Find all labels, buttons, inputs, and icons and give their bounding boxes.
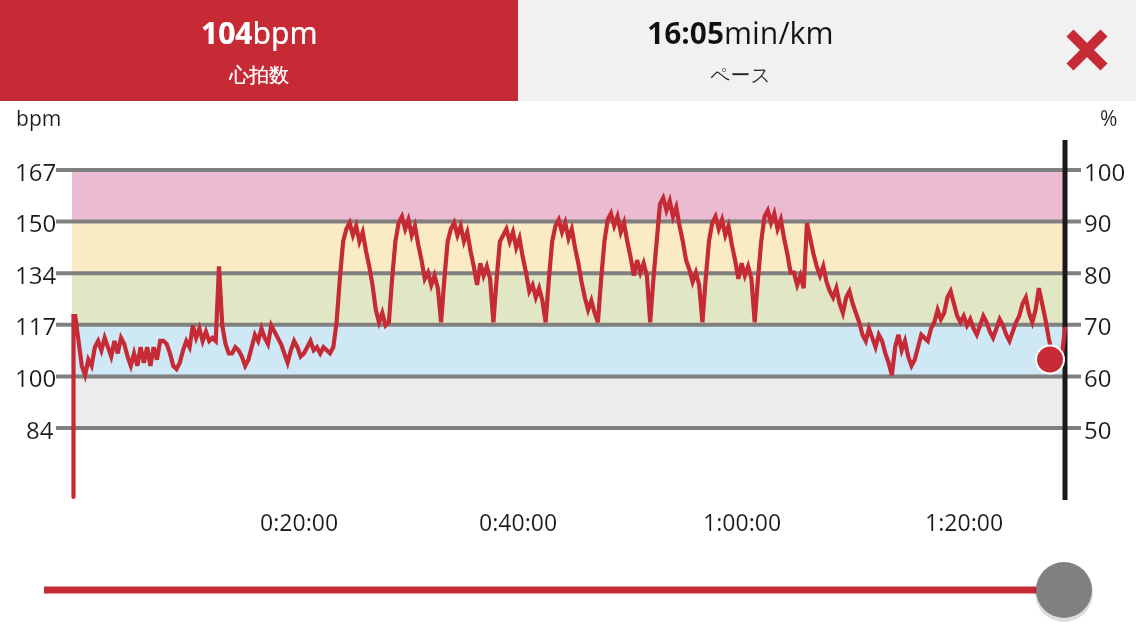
staticText: 0:20:00 xyxy=(260,506,339,537)
staticText: 90 xyxy=(1084,206,1112,239)
staticText: 104bpm xyxy=(201,12,318,53)
staticText: 0:40:00 xyxy=(479,506,558,537)
staticText: ペース xyxy=(710,63,771,88)
staticText: 84 xyxy=(26,413,54,446)
staticText: 1:00:00 xyxy=(703,506,782,537)
button[interactable]: Close xyxy=(1053,16,1121,84)
button[interactable]: 16:05min/km xyxy=(518,0,1136,101)
staticText: 16:05min/km xyxy=(647,12,834,53)
staticText: bpm xyxy=(16,104,62,133)
staticText: 心拍数 xyxy=(229,63,289,88)
staticText: 70 xyxy=(1084,309,1112,342)
staticText: 134 xyxy=(15,258,57,291)
staticText: % xyxy=(1100,104,1118,133)
button[interactable]: Timeline scrubber xyxy=(0,556,1136,626)
staticText: 167 xyxy=(15,155,57,188)
staticText: 80 xyxy=(1084,258,1112,291)
staticText: 100 xyxy=(15,361,57,394)
staticText: 100 xyxy=(1084,155,1126,188)
staticText: 50 xyxy=(1084,413,1112,446)
button[interactable]: 104bpm xyxy=(0,0,518,101)
staticText: 1:20:00 xyxy=(925,506,1004,537)
staticText: 150 xyxy=(15,206,57,239)
staticText: 117 xyxy=(15,309,57,342)
staticText: 60 xyxy=(1084,361,1112,394)
